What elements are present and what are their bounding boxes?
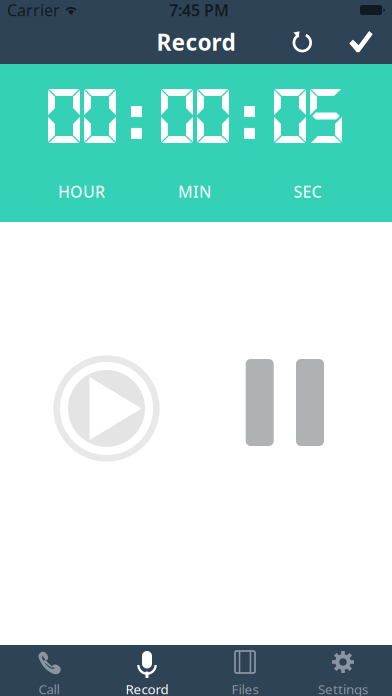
button[interactable]: Reset: [280, 20, 324, 64]
button[interactable]: Done: [339, 20, 383, 64]
staticText: Record: [125, 680, 168, 696]
staticText: Settings: [318, 680, 368, 696]
staticText: HOUR: [58, 181, 105, 202]
button[interactable]: Files: [196, 645, 294, 696]
staticText: Files: [231, 680, 258, 696]
staticText: Record: [156, 27, 235, 57]
button[interactable]: Call: [0, 645, 98, 696]
staticText: Call: [38, 680, 59, 696]
button[interactable]: Record: [98, 645, 196, 696]
staticText: 7:45 PM: [169, 0, 229, 21]
button[interactable]: Play: [53, 355, 160, 462]
staticText: Carrier: [7, 0, 60, 21]
staticText: MIN: [178, 181, 211, 202]
staticText: SEC: [293, 181, 321, 202]
button[interactable]: Pause: [246, 359, 324, 446]
button[interactable]: Settings: [294, 645, 392, 696]
